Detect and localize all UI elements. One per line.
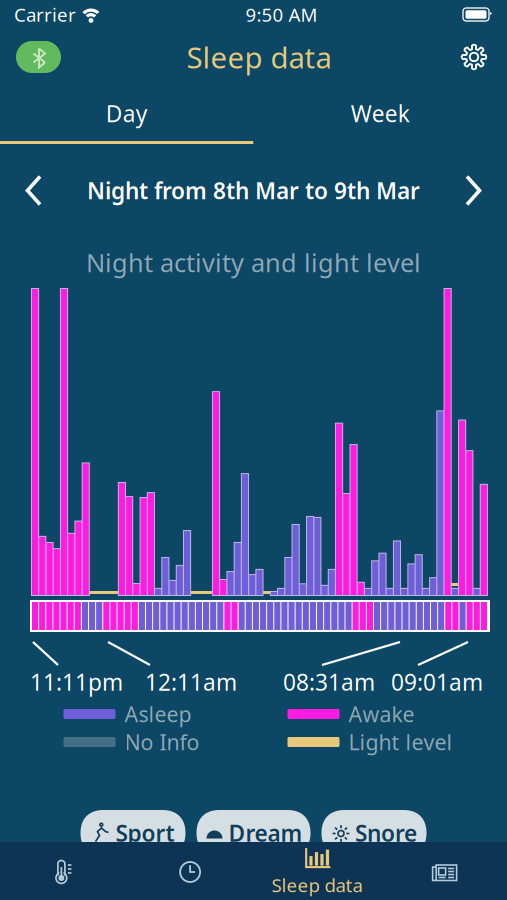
staticText: Light level	[348, 728, 452, 756]
staticText: 12:11am	[145, 667, 237, 697]
button[interactable]: Sleep data	[253, 842, 380, 900]
staticText: Sport	[115, 818, 174, 848]
button[interactable]: Next night	[447, 164, 499, 216]
staticText: Night activity and light level	[86, 246, 421, 279]
staticText: Night from 8th Mar to 9th Mar	[87, 175, 420, 205]
staticText: 09:01am	[391, 667, 483, 697]
button[interactable]: Temperature	[0, 842, 127, 900]
staticText: Snore	[355, 818, 417, 848]
button[interactable]: News	[380, 842, 507, 900]
staticText: Awake	[348, 700, 414, 728]
staticText: Carrier	[14, 2, 76, 27]
button[interactable]: Snore	[321, 810, 426, 856]
button[interactable]: Settings	[457, 41, 491, 73]
staticText: Week	[351, 98, 410, 128]
staticText: Asleep	[124, 700, 191, 728]
staticText: 11:11pm	[30, 667, 123, 697]
staticText: Sleep data	[186, 37, 331, 76]
staticText: Sleep data	[271, 873, 362, 897]
button[interactable]: Dream	[196, 810, 310, 856]
button[interactable]: Previous night	[8, 164, 60, 216]
staticText: 9:50 AM	[245, 2, 317, 27]
staticText: Dream	[228, 818, 302, 848]
button[interactable]: Bluetooth	[16, 41, 61, 73]
button[interactable]: Day	[0, 86, 253, 141]
staticText: Day	[106, 98, 148, 128]
staticText: No Info	[124, 728, 199, 756]
button[interactable]: Alarm	[127, 842, 254, 900]
staticText: 08:31am	[283, 667, 375, 697]
button[interactable]: Week	[253, 86, 507, 141]
button[interactable]: Sport	[80, 810, 185, 856]
